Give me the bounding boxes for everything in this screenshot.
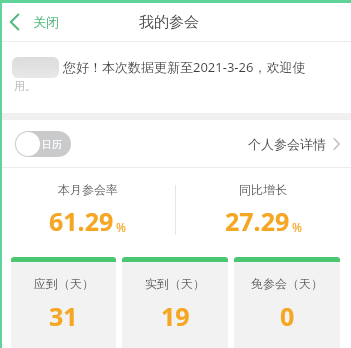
staticText: 27.29 xyxy=(225,204,290,238)
other: Back xyxy=(8,13,22,31)
button[interactable]: 应到（天） xyxy=(11,257,116,348)
staticText: 我的参会 xyxy=(139,13,199,32)
staticText: 61.29 xyxy=(49,204,114,238)
staticText: 19 xyxy=(161,299,190,333)
staticText: 免参会（天） xyxy=(251,276,323,291)
staticText: 本月参会率 xyxy=(58,182,118,197)
button[interactable]: 实到（天） xyxy=(122,257,228,348)
staticText: 31 xyxy=(49,299,78,333)
staticText: 0 xyxy=(280,299,295,333)
button[interactable]: 免参会（天） xyxy=(234,257,340,348)
button[interactable]: 日历 xyxy=(15,131,71,157)
staticText: 应到（天） xyxy=(34,276,94,291)
button[interactable]: 同比增长 xyxy=(175,168,351,251)
staticText: 您好！本次数据更新至2021-3-26，欢迎使 xyxy=(63,58,306,76)
staticText: 关闭 xyxy=(33,14,59,30)
staticText: 用。 xyxy=(14,79,36,93)
staticText: 同比增长 xyxy=(239,182,287,197)
staticText: % xyxy=(292,219,302,235)
staticText: % xyxy=(116,219,126,235)
button[interactable]: Back xyxy=(0,9,69,35)
button[interactable]: 本月参会率 xyxy=(0,168,175,251)
button[interactable]: 个人参会详情 xyxy=(238,130,351,158)
staticText: 实到（天） xyxy=(145,276,205,291)
staticText: 日历 xyxy=(42,138,62,151)
staticText: 个人参会详情 xyxy=(248,136,326,152)
